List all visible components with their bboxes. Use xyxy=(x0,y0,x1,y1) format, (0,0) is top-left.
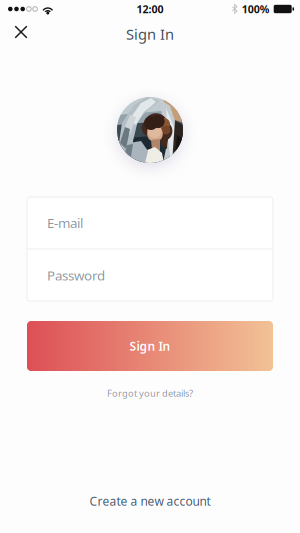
staticText: Create a new account xyxy=(89,493,210,509)
staticText: Sign In xyxy=(129,338,170,354)
button[interactable]: Close xyxy=(0,18,42,46)
button[interactable]: Create a new account xyxy=(0,481,300,521)
staticText: Sign In xyxy=(126,24,174,44)
button[interactable]: Forgot your details? xyxy=(102,382,198,404)
staticText: 100% xyxy=(242,2,270,16)
staticText: E-mail xyxy=(47,214,83,232)
staticText: Password xyxy=(47,266,105,284)
staticText: 12:00 xyxy=(136,2,163,16)
staticText: Forgot your details? xyxy=(107,387,193,399)
button[interactable]: Sign In xyxy=(27,321,273,371)
